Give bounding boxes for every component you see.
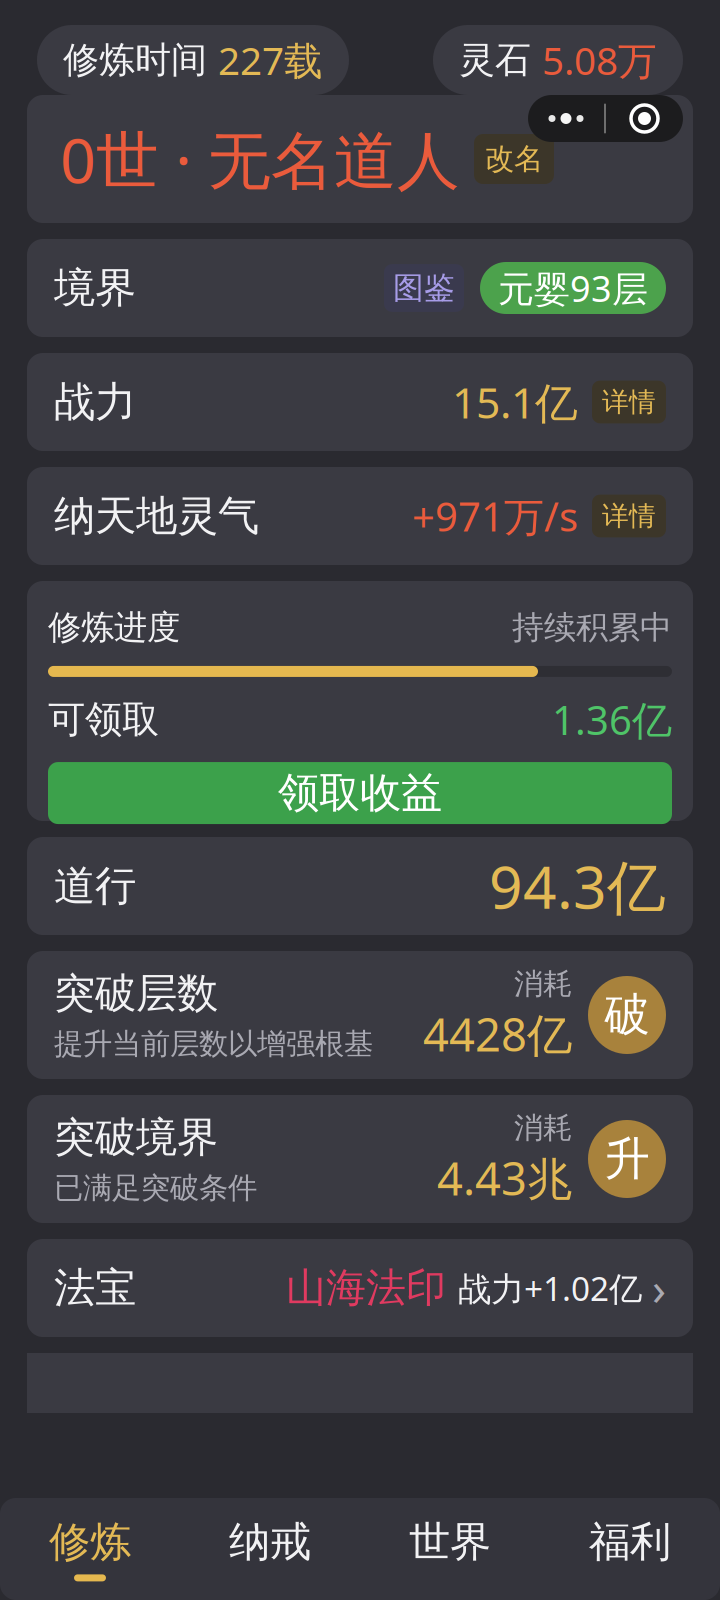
button[interactable]: 修炼 [0, 1498, 180, 1600]
staticText: 改名 [485, 141, 543, 177]
staticText: 破 [604, 987, 649, 1043]
staticText: 可领取 [48, 697, 159, 742]
staticText: 世界 [409, 1517, 491, 1567]
staticText: 道行 [54, 861, 136, 911]
staticText: 山海法印 [286, 1263, 446, 1312]
staticText: 消耗 [514, 966, 572, 1002]
button[interactable]: 升 [588, 1120, 666, 1198]
staticText: 元婴93层 [498, 264, 648, 312]
staticText: 详情 [602, 386, 656, 418]
button[interactable]: 世界 [360, 1498, 540, 1600]
staticText: 4428亿 [423, 1004, 572, 1064]
button[interactable]: 灵石 [433, 25, 683, 95]
staticText: 修炼 [49, 1517, 131, 1567]
staticText: 4.43兆 [437, 1148, 572, 1208]
button[interactable]: 改名 [474, 134, 554, 184]
staticText: 持续积累中 [512, 608, 672, 647]
staticText: 福利 [589, 1517, 671, 1567]
staticText: +971万/s [412, 489, 578, 542]
button[interactable]: 破 [588, 976, 666, 1054]
staticText: 94.3亿 [489, 847, 666, 925]
staticText: 消耗 [514, 1110, 572, 1146]
button[interactable]: 元婴93层 [480, 262, 666, 314]
staticText: 灵石 [459, 38, 542, 82]
staticText: 战力 [54, 377, 136, 427]
staticText: 修炼进度 [48, 607, 180, 648]
button[interactable]: 关闭 [606, 95, 683, 142]
staticText: 纳天地灵气 [54, 491, 259, 541]
staticText: 领取收益 [278, 768, 442, 818]
staticText: 图鉴 [393, 269, 455, 307]
staticText: 提升当前层数以增强根基 [54, 1026, 373, 1062]
staticText: 0世 · 无名道人 [60, 117, 460, 201]
button[interactable]: 图鉴 [384, 264, 464, 312]
button[interactable]: 法宝 [27, 1239, 693, 1337]
staticText: 已满足突破条件 [54, 1170, 257, 1206]
button[interactable]: 纳戒 [180, 1498, 360, 1600]
staticText: 法宝 [54, 1263, 136, 1313]
staticText: 详情 [602, 500, 656, 532]
staticText: 修炼时间 [63, 38, 218, 82]
button[interactable]: 领取收益 [48, 762, 672, 824]
button[interactable]: 修炼时间 [37, 25, 349, 95]
staticText: 突破层数 [54, 968, 218, 1019]
staticText: 1.36亿 [552, 693, 672, 746]
staticText: 突破境界 [54, 1112, 218, 1163]
staticText: 纳戒 [229, 1517, 311, 1567]
staticText: › [652, 1258, 666, 1318]
staticText: 5.08万 [542, 34, 657, 86]
staticText: 升 [604, 1131, 649, 1187]
button[interactable]: 福利 [540, 1498, 720, 1600]
button[interactable]: 更多 [528, 95, 604, 142]
staticText: 战力+1.02亿 [458, 1266, 642, 1310]
staticText: 15.1亿 [452, 374, 578, 430]
staticText: 境界 [54, 263, 136, 313]
staticText: 227载 [218, 34, 323, 86]
